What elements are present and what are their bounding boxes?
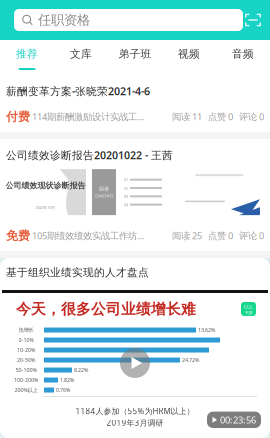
- staticText: 8.22%: [74, 366, 88, 374]
- staticText: 阅读 25: [172, 229, 202, 242]
- staticText: 24.72%: [182, 356, 199, 364]
- staticText: 02: [124, 185, 128, 191]
- staticText: 1.82%: [60, 376, 74, 384]
- staticText: 00:23:56: [220, 414, 256, 426]
- staticText: 评论 0: [239, 229, 264, 242]
- staticText: 2019年3月调研: [106, 417, 163, 428]
- staticText: 阅读 11: [172, 110, 202, 123]
- staticText: 2020年10月: [35, 205, 55, 210]
- button[interactable]: 弟子班: [108, 40, 162, 74]
- staticText: 20-50%: [17, 356, 35, 364]
- staticText: 200%以上: [14, 386, 37, 394]
- staticText: 弟子班: [118, 47, 151, 60]
- staticText: 今天，很多公司业绩增长难: [16, 300, 196, 318]
- button[interactable]: 任职资格: [14, 9, 243, 31]
- button[interactable]: 视频: [162, 40, 216, 74]
- button[interactable]: 公司绩效诊断报告20201022 - 王茜: [0, 139, 270, 251]
- staticText: 基于组织业绩实现的人才盘点: [6, 266, 149, 279]
- staticText: 1184人参加（55%为HRM以上）: [75, 406, 194, 416]
- staticText: 100-200%: [14, 376, 38, 384]
- staticText: 0.76%: [56, 386, 70, 394]
- staticText: 负增长: [18, 327, 33, 333]
- staticText: 0-10%: [18, 336, 33, 344]
- staticText: 03: [124, 194, 128, 199]
- button[interactable]: 文库: [54, 40, 108, 74]
- button[interactable]: 基于组织业绩实现的人才盘点: [0, 258, 270, 438]
- staticText: CCC: [244, 303, 253, 310]
- button[interactable]: 推荐: [0, 40, 54, 74]
- staticText: 公司绩效现状诊断报告: [5, 181, 85, 190]
- staticText: 公司绩效诊断报告20201022 - 王茜: [6, 148, 173, 162]
- staticText: 免费: [6, 228, 30, 243]
- staticText: 目录: [99, 186, 109, 192]
- staticText: 04: [124, 202, 128, 207]
- staticText: 评论 0: [239, 110, 264, 123]
- staticText: CONTENTS: [94, 193, 113, 199]
- staticText: 付费: [6, 109, 30, 124]
- staticText: 推荐: [16, 47, 38, 60]
- staticText: 薪酬变革方案-张晓荣2021-4-6: [6, 84, 150, 98]
- button[interactable]: 薪酬变革方案-张晓荣2021-4-6: [0, 74, 270, 132]
- staticText: 114期薪酬激励设计实战工…: [30, 110, 144, 123]
- staticText: 50-100%: [15, 366, 36, 374]
- staticText: 点赞 0: [208, 229, 233, 242]
- staticText: 13.62%: [198, 326, 215, 334]
- button[interactable]: 音频: [216, 40, 270, 74]
- staticText: 10-20%: [17, 346, 35, 354]
- button[interactable]: Scan QR code: [243, 8, 263, 32]
- staticText: 01: [124, 177, 128, 182]
- staticText: 音频: [232, 47, 254, 60]
- staticText: 中国: [244, 310, 252, 315]
- staticText: 文库: [70, 47, 92, 60]
- staticText: 105期绩效绩效实战工作坊…: [30, 229, 144, 242]
- staticText: 点赞 0: [208, 110, 233, 123]
- staticText: 任职资格: [38, 12, 90, 28]
- staticText: 视频: [178, 47, 200, 60]
